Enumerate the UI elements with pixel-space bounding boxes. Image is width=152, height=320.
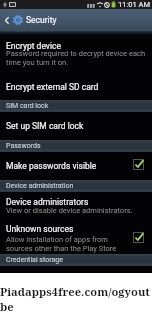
button[interactable] bbox=[0, 152, 152, 180]
staticText: Device administrators bbox=[6, 197, 89, 207]
other: Navigate up bbox=[2, 16, 11, 25]
button[interactable]: Navigate up bbox=[0, 9, 152, 31]
staticText: Screen security bbox=[6, 28, 54, 32]
staticText: Make passwords visible bbox=[6, 161, 97, 171]
staticText: ▮▮▮ bbox=[87, 2, 96, 8]
staticText: Passwords bbox=[6, 142, 41, 150]
button[interactable]: Toggle setting bbox=[133, 232, 144, 243]
staticText: Piadapps4free.com/ogyout be bbox=[0, 284, 150, 314]
button[interactable] bbox=[0, 36, 152, 70]
button[interactable]: Toggle setting bbox=[133, 159, 144, 170]
staticText: Encrypt device bbox=[6, 41, 62, 51]
staticText: View or disable device administrators. bbox=[6, 206, 133, 215]
staticText: Encrypt external SD card bbox=[6, 82, 99, 92]
staticText: Credential storage bbox=[6, 256, 63, 264]
button[interactable] bbox=[0, 192, 152, 220]
button[interactable] bbox=[0, 220, 152, 254]
staticText: Set up SIM card lock bbox=[6, 121, 84, 131]
staticText: SIM card lock bbox=[6, 102, 49, 110]
staticText: Device administration bbox=[6, 182, 74, 190]
button[interactable] bbox=[0, 70, 152, 100]
staticText: Security bbox=[26, 15, 57, 25]
staticText: 11:01 AM bbox=[118, 0, 150, 9]
staticText: Password required to decrypt device each… bbox=[6, 49, 146, 66]
staticText: Unknown sources bbox=[6, 224, 74, 234]
staticText: Allow installation of apps from sources … bbox=[6, 235, 117, 252]
button[interactable] bbox=[0, 112, 152, 140]
